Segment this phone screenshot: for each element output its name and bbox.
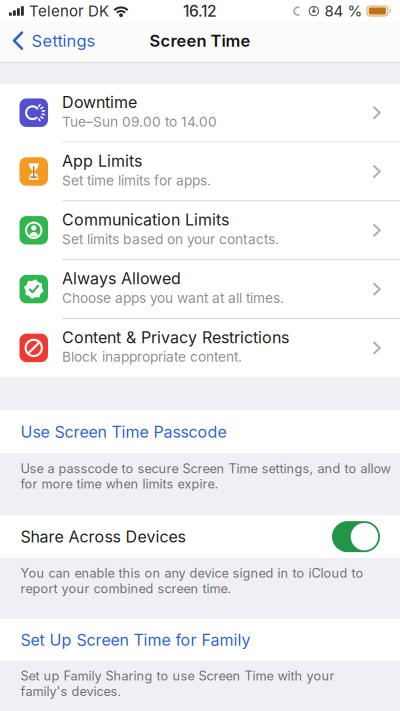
staticText: 84 %	[324, 2, 362, 20]
staticText: App Limits	[62, 151, 142, 171]
staticText: 16.12	[183, 2, 217, 20]
button[interactable]: Content & Privacy Restrictions	[0, 319, 400, 377]
button[interactable]: Use Screen Time Passcode	[0, 410, 400, 453]
button[interactable]: Communication Limits	[0, 201, 400, 259]
staticText: Content & Privacy Restrictions	[62, 328, 289, 347]
staticText: Set time limits for apps.	[62, 172, 211, 189]
staticText: Use a passcode to secure Screen Time set…	[20, 461, 390, 492]
staticText: Set up Family Sharing to use Screen Time…	[20, 668, 334, 699]
staticText: Set limits based on your contacts.	[62, 231, 279, 247]
staticText: Screen Time	[149, 31, 250, 51]
staticText: Set Up Screen Time for Family	[20, 630, 250, 650]
button[interactable]: Downtime	[0, 84, 400, 142]
staticText: Telenor DK	[29, 2, 109, 20]
staticText: Tue–Sun 09.00 to 14.00	[62, 113, 217, 130]
staticText: Always Allowed	[62, 269, 181, 288]
staticText: Choose apps you want at all times.	[62, 290, 284, 306]
staticText: Share Across Devices	[20, 527, 185, 546]
button[interactable]: Settings	[0, 22, 105, 62]
staticText: Block inappropriate content.	[62, 348, 242, 365]
staticText: Use Screen Time Passcode	[20, 422, 226, 442]
button[interactable]: Always Allowed	[0, 260, 400, 318]
button[interactable]: Share Across Devices	[332, 521, 380, 552]
staticText: Downtime	[62, 92, 137, 112]
staticText: Settings	[31, 31, 95, 51]
button[interactable]: App Limits	[0, 142, 400, 200]
button[interactable]: Set Up Screen Time for Family	[0, 619, 400, 661]
staticText: You can enable this on any device signed…	[20, 566, 363, 596]
staticText: Communication Limits	[62, 210, 229, 229]
